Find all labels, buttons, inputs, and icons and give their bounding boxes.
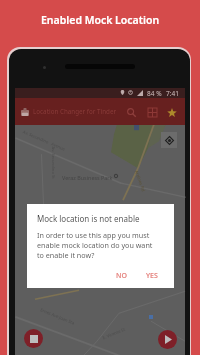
- button[interactable]: Search: [123, 104, 140, 121]
- staticText: 7:41: [166, 89, 179, 98]
- staticText: NO: [116, 271, 127, 281]
- staticText: 84 %: [147, 89, 162, 98]
- staticText: Location Changer for Tinder: [33, 107, 117, 115]
- button[interactable]: Play: [158, 330, 177, 349]
- staticText: Ardines Rd: [134, 169, 147, 193]
- staticText: Mock location is not enable: [37, 213, 140, 224]
- staticText: Av. Secundino St: [49, 146, 55, 179]
- staticText: In order to use this app you must enable…: [37, 230, 159, 260]
- staticText: Enabled Mock Location: [41, 13, 160, 27]
- button[interactable]: Stop: [24, 329, 43, 348]
- staticText: Av. Secundino Avenue: [22, 129, 66, 153]
- staticText: YES: [146, 271, 158, 281]
- button[interactable]: Bookmarks: [144, 104, 161, 121]
- staticText: Veraz Business Park: [62, 174, 113, 181]
- button[interactable]: Favorite: [163, 104, 180, 121]
- button[interactable]: NO: [113, 269, 130, 283]
- button[interactable]: My location: [161, 132, 177, 148]
- button[interactable]: YES: [143, 269, 161, 283]
